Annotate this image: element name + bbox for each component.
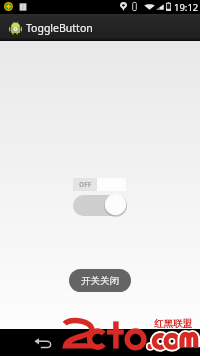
staticText: 开关关闭 (81, 275, 119, 287)
staticText: ToggleButton (26, 21, 93, 35)
button[interactable]: Back (32, 332, 54, 354)
staticText: 红黑联盟 (154, 318, 192, 330)
button[interactable]: OFF (73, 178, 126, 191)
staticText: 19:12 (174, 1, 199, 14)
button[interactable]: 开关关闭 (69, 269, 131, 292)
button[interactable]: Toggle switch (73, 193, 127, 216)
staticText: OFF (79, 180, 92, 189)
